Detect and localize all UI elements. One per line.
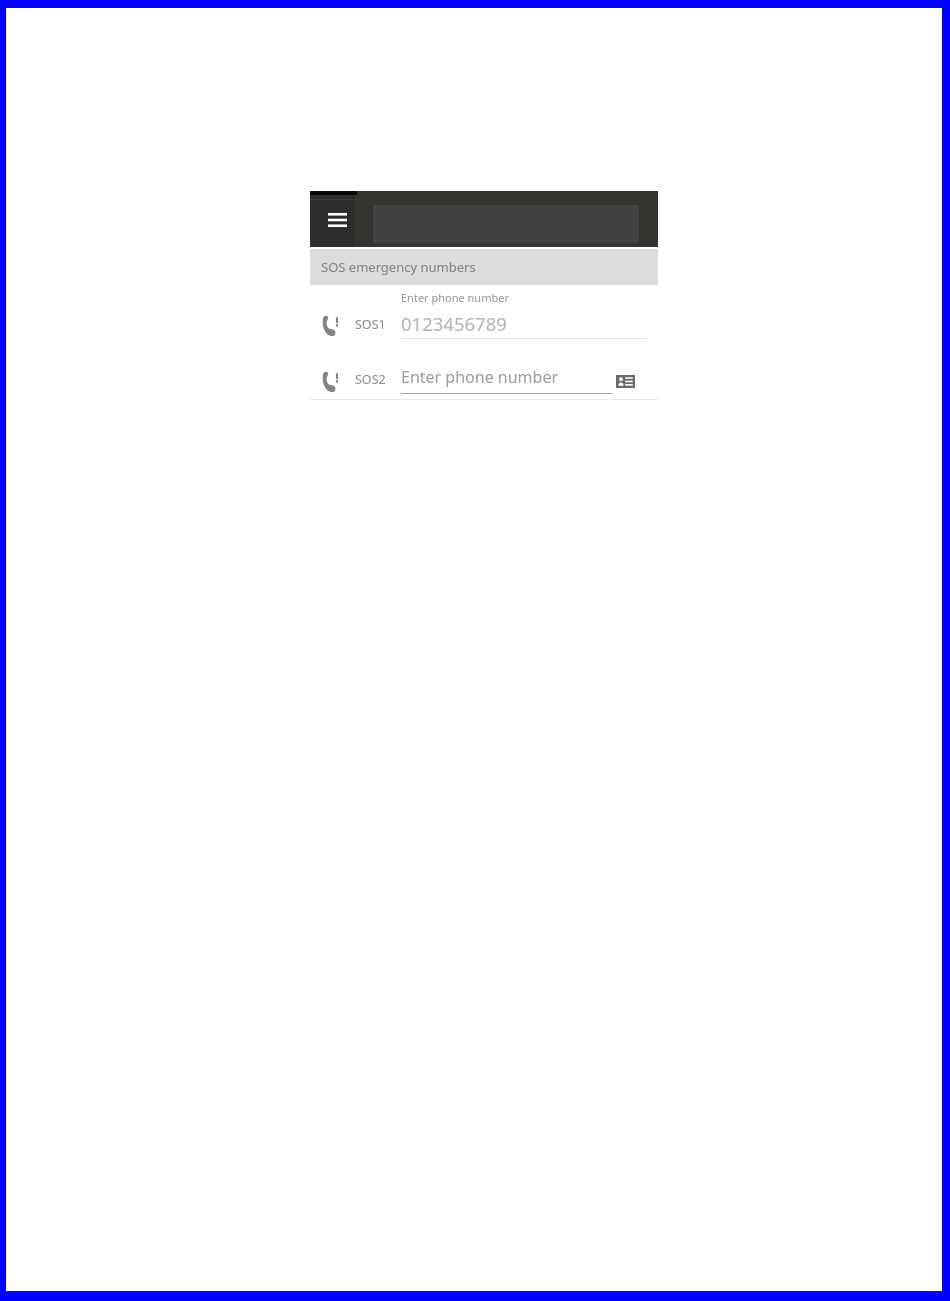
button[interactable]: SOS2 [310, 347, 658, 400]
staticText: SOS1 [355, 316, 386, 333]
staticText: SOS2 [355, 371, 386, 388]
button[interactable]: SOS emergency numbers [310, 249, 658, 285]
button[interactable]: SOS1 [310, 285, 658, 347]
staticText: SOS emergency numbers [321, 258, 476, 276]
button[interactable]: Open navigation drawer [318, 200, 357, 239]
staticText: 0123456789 [401, 311, 507, 336]
button[interactable]: Pick contact [606, 366, 644, 396]
staticText: Enter phone number [401, 366, 559, 388]
staticText: Enter phone number [401, 290, 509, 305]
